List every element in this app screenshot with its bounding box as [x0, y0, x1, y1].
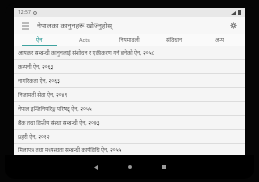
staticText: बैंक तथा वित्तीय संस्था सम्बन्धी ऐन, २०७… — [18, 119, 100, 126]
button[interactable]: Back — [86, 157, 106, 177]
staticText: निजामती सेवा ऐन, २०४९ — [18, 91, 68, 98]
button[interactable]: नेपाल इन्जिनियरिङ्ग परिषद् ऐन, २०५५ — [14, 102, 245, 115]
staticText: नेपाल इन्जिनियरिङ्ग परिषद् ऐन, २०५५ — [18, 105, 92, 112]
button[interactable]: नियमावली — [107, 34, 152, 46]
staticText: प्रहरी ऐन, २०१२ — [18, 133, 50, 140]
button[interactable]: Home — [120, 157, 140, 177]
button[interactable]: ऐन — [17, 34, 62, 46]
button[interactable]: मिलापत्र तथा मध्यस्थता सम्बन्धी कार्यविध… — [14, 144, 245, 155]
staticText: संविधान — [166, 36, 183, 43]
staticText: नेपालका कानुनहरू खोज्नुहोस् — [37, 21, 227, 31]
button[interactable]: प्रहरी ऐन, २०१२ — [14, 130, 245, 143]
staticText: नागरिकता ऐन, २०६३ — [18, 77, 60, 84]
button[interactable]: निजामती सेवा ऐन, २०४९ — [14, 88, 245, 101]
button[interactable]: संविधान — [152, 34, 197, 46]
button[interactable]: बैंक तथा वित्तीय संस्था सम्बन्धी ऐन, २०७… — [14, 116, 245, 129]
button[interactable]: कम्पनी ऐन, २०६३ — [14, 60, 245, 73]
staticText: नियमावली — [119, 36, 140, 43]
staticText: आयकर सम्बन्धी कानुनलाई संशोधन र एकीकरण ग… — [18, 49, 155, 56]
staticText: Acts — [79, 36, 90, 43]
button[interactable]: Recent apps — [154, 157, 174, 177]
button[interactable]: आयकर सम्बन्धी कानुनलाई संशोधन र एकीकरण ग… — [14, 46, 245, 59]
staticText: ऐन — [36, 36, 43, 43]
staticText: कम्पनी ऐन, २०६३ — [18, 63, 54, 70]
staticText: अन्य — [215, 36, 225, 43]
button[interactable]: Open navigation menu — [19, 19, 32, 32]
staticText: मिलापत्र तथा मध्यस्थता सम्बन्धी कार्यविध… — [18, 146, 122, 153]
button[interactable]: Settings — [227, 19, 240, 32]
button[interactable]: नागरिकता ऐन, २०६३ — [14, 74, 245, 87]
staticText: 12:57 — [18, 9, 31, 16]
button[interactable]: अन्य — [197, 34, 242, 46]
button[interactable]: Acts — [62, 34, 107, 46]
